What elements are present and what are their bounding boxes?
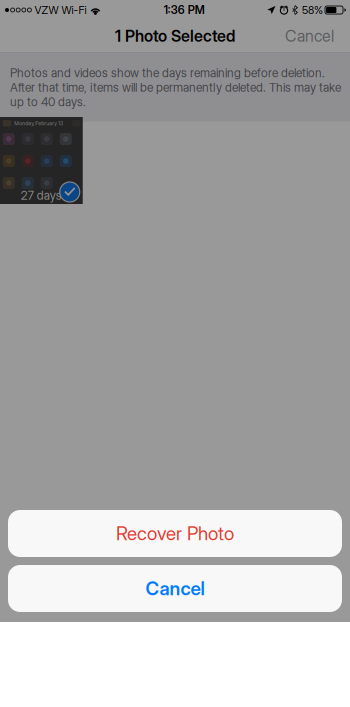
staticText: 58% [302, 3, 323, 16]
button[interactable]: Cancel [8, 565, 342, 612]
staticText: Cancel [285, 26, 334, 46]
button[interactable]: Recover Photo [8, 510, 342, 557]
staticText: Recover Photo [116, 522, 234, 545]
staticText: Photos and videos show the days remainin… [10, 65, 341, 109]
staticText: 1:36 PM [164, 3, 205, 17]
staticText: VZW Wi-Fi [34, 3, 86, 16]
staticText: Monday, February 13 [14, 120, 63, 126]
staticText: 27 days [21, 188, 62, 202]
staticText: 1 Photo Selected [115, 26, 235, 46]
button[interactable]: Monday, February 13 [0, 121, 87, 208]
button[interactable]: Cancel [277, 20, 342, 52]
staticText: Cancel [145, 577, 204, 600]
